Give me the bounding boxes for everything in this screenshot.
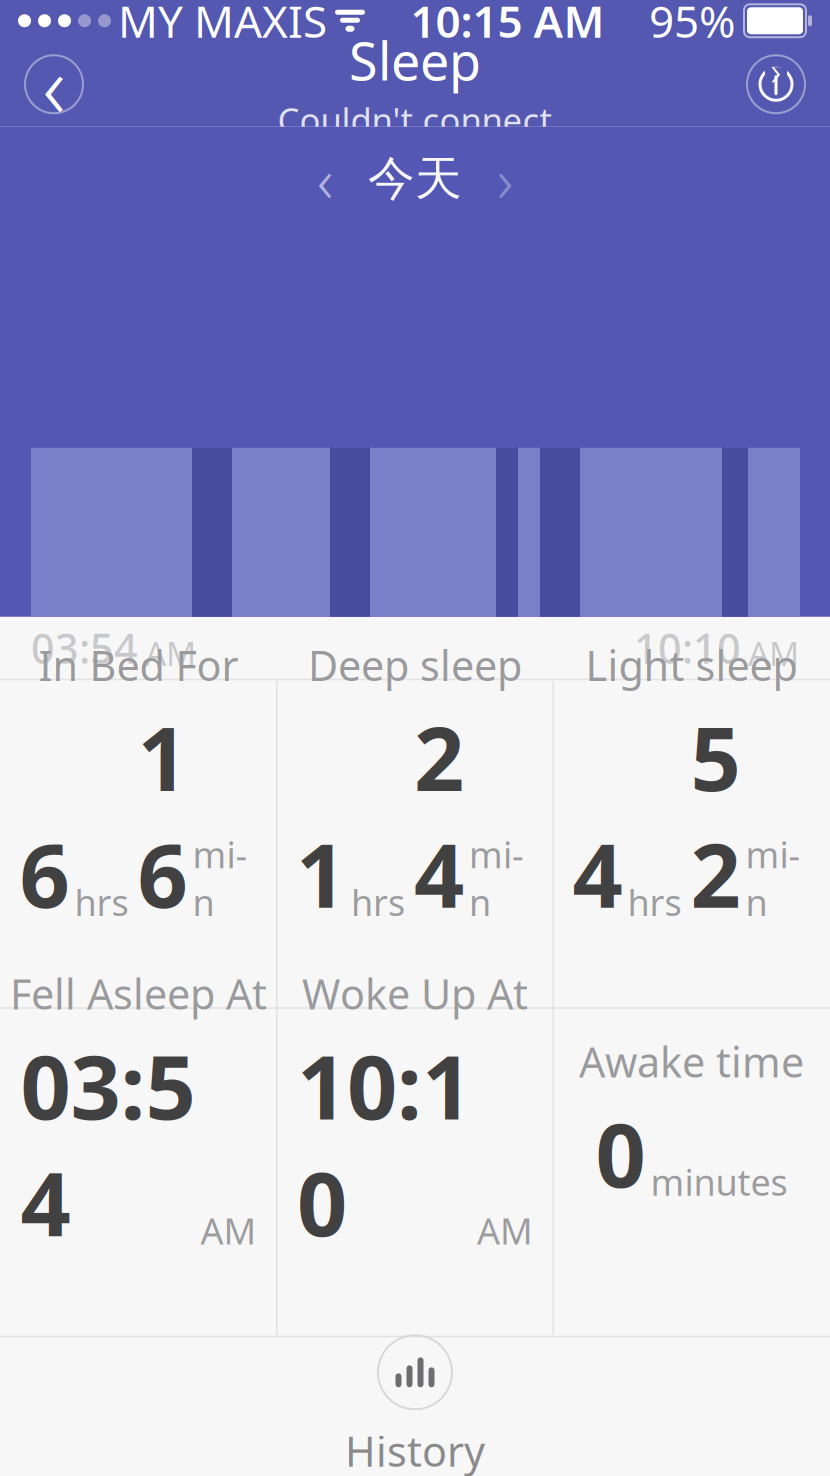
button[interactable]: Back xyxy=(10,40,98,128)
staticText: 1 xyxy=(296,815,346,932)
staticText: AM xyxy=(477,1207,533,1254)
staticText: min xyxy=(745,830,800,926)
staticText: › xyxy=(497,138,513,219)
staticText: 10:15 AM xyxy=(410,0,604,50)
staticText: 03:54 xyxy=(20,1027,195,1260)
staticText: ‹ xyxy=(42,26,65,143)
staticText: 4 xyxy=(572,815,622,932)
staticText: In Bed For xyxy=(38,637,238,692)
staticText: AM xyxy=(200,1207,256,1254)
staticText: Deep sleep xyxy=(308,637,522,692)
staticText: Fell Asleep At xyxy=(10,966,267,1021)
staticText: › xyxy=(770,44,781,97)
button[interactable]: History xyxy=(0,1337,830,1476)
staticText: Awake time xyxy=(579,1034,804,1089)
staticText: 95% xyxy=(649,0,736,50)
staticText: min xyxy=(192,830,247,926)
staticText: AM xyxy=(748,631,799,675)
staticText: 16 xyxy=(137,698,187,932)
staticText: Couldn't connect xyxy=(277,97,552,143)
staticText: Woke Up At xyxy=(302,966,528,1021)
staticText: 10:10 xyxy=(634,620,741,675)
staticText: 52 xyxy=(690,698,740,932)
staticText: ‹ xyxy=(317,138,333,219)
staticText: 24 xyxy=(414,698,464,932)
staticText: hrs xyxy=(351,878,405,926)
staticText: AM xyxy=(145,631,196,675)
button[interactable]: 今天 xyxy=(355,149,475,209)
staticText: MY MAXIS xyxy=(118,0,327,50)
staticText: History xyxy=(345,1423,485,1476)
staticText: min xyxy=(469,830,524,926)
button[interactable]: Next day xyxy=(475,149,535,209)
button[interactable]: Share xyxy=(732,40,820,128)
staticText: 今天 xyxy=(368,150,462,207)
staticText: 10:10 xyxy=(297,1027,472,1260)
staticText: hrs xyxy=(74,878,128,926)
button[interactable]: Previous day xyxy=(295,149,355,209)
staticText: 03:54 xyxy=(31,620,138,675)
staticText: minutes xyxy=(650,1158,787,1206)
staticText: 0 xyxy=(595,1095,645,1212)
staticText: 6 xyxy=(19,815,69,932)
staticText: Sleep xyxy=(349,26,481,95)
staticText: Light sleep xyxy=(585,637,797,692)
staticText: hrs xyxy=(627,878,681,926)
